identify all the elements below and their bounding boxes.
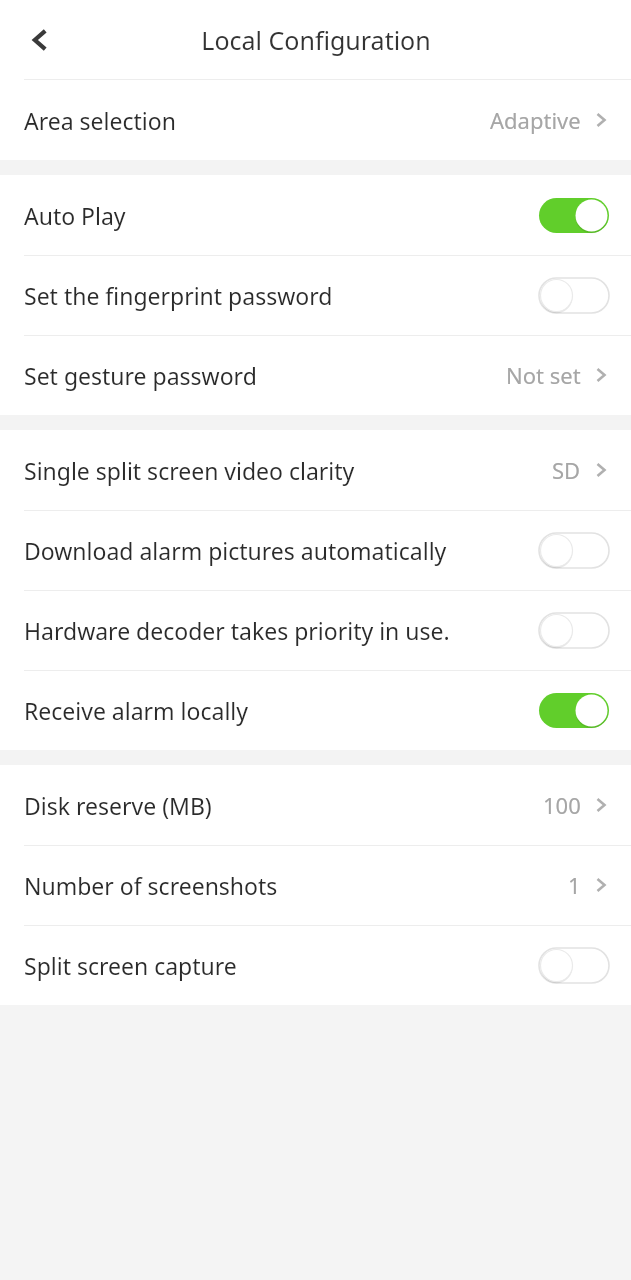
button[interactable]: Single split screen video clarity xyxy=(0,430,631,510)
button[interactable]: Disk reserve (MB) xyxy=(0,765,631,845)
staticText: Single split screen video clarity xyxy=(24,455,355,486)
button[interactable]: Download alarm pictures automatically xyxy=(0,510,631,590)
staticText: Number of screenshots xyxy=(24,870,278,901)
button[interactable]: Set gesture password xyxy=(0,335,631,415)
staticText: 1 xyxy=(568,870,581,900)
staticText: Not set xyxy=(506,360,581,390)
staticText: Receive alarm locally xyxy=(24,695,248,726)
button[interactable]: Toggle off xyxy=(539,613,609,648)
button[interactable]: Set the fingerprint password xyxy=(0,255,631,335)
button[interactable]: Number of screenshots xyxy=(0,845,631,925)
staticText: Set gesture password xyxy=(24,360,257,391)
staticText: Adaptive xyxy=(490,105,581,135)
staticText: Disk reserve (MB) xyxy=(24,790,212,821)
staticText: Set the fingerprint password xyxy=(24,280,333,311)
button[interactable]: Toggle on xyxy=(539,198,609,233)
staticText: Local Configuration xyxy=(201,23,431,57)
button[interactable]: Split screen capture xyxy=(0,925,631,1005)
button[interactable]: Area selection xyxy=(0,80,631,160)
button[interactable]: Back xyxy=(12,12,68,68)
button[interactable]: Toggle off xyxy=(539,948,609,983)
button[interactable]: Toggle off xyxy=(539,533,609,568)
staticText: Hardware decoder takes priority in use. xyxy=(24,615,450,646)
staticText: Auto Play xyxy=(24,200,126,231)
staticText: Download alarm pictures automatically xyxy=(24,535,447,566)
button[interactable]: Hardware decoder takes priority in use. xyxy=(0,590,631,670)
staticText: SD xyxy=(552,455,581,485)
button[interactable]: Toggle off xyxy=(539,278,609,313)
button[interactable]: Receive alarm locally xyxy=(0,670,631,750)
button[interactable]: Toggle on xyxy=(539,693,609,728)
staticText: 100 xyxy=(543,790,581,820)
staticText: Area selection xyxy=(24,105,176,136)
button[interactable]: Auto Play xyxy=(0,175,631,255)
staticText: Split screen capture xyxy=(24,950,237,981)
